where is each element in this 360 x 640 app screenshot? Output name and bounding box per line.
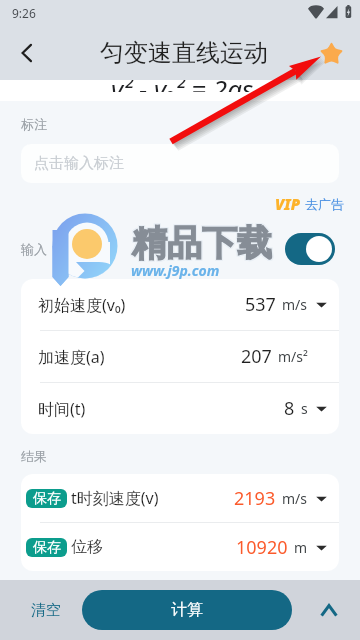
staticText: 207 xyxy=(241,344,272,369)
button[interactable]: 点击输入标注 xyxy=(21,144,339,183)
staticText: m/s² xyxy=(278,347,308,366)
button[interactable]: 保存 xyxy=(21,523,339,571)
button[interactable]: 加速度(a) xyxy=(21,331,339,382)
staticText: 清空 xyxy=(31,601,61,620)
staticText: 9:26 xyxy=(12,5,36,21)
button[interactable]: 保存 xyxy=(21,474,339,522)
staticText: 537 xyxy=(245,292,276,317)
staticText: 8 xyxy=(284,396,295,421)
button[interactable]: Toggle ads xyxy=(285,233,335,265)
staticText: m/s xyxy=(282,489,308,508)
staticText: 结果 xyxy=(21,448,47,464)
staticText: www.j9p.com xyxy=(131,261,220,280)
staticText: 精品下载 xyxy=(132,222,272,266)
staticText: 精品下载 xyxy=(132,221,272,265)
button[interactable]: 时间(t) xyxy=(21,383,339,434)
staticText: s xyxy=(301,399,308,418)
button[interactable]: 初始速度(v₀) xyxy=(21,279,339,330)
button[interactable]: 计算 xyxy=(82,590,292,630)
staticText: t时刻速度(v) xyxy=(71,487,159,509)
staticText: 匀变速直线运动 xyxy=(100,38,268,68)
staticText: 精品下载 xyxy=(133,222,273,266)
staticText: 标注 xyxy=(21,116,47,132)
staticText: 位移 xyxy=(71,537,103,557)
button[interactable]: Favorite xyxy=(311,33,351,73)
staticText: 精品下载 xyxy=(133,220,273,264)
staticText: 输入 xyxy=(21,241,47,257)
staticText: 精品下载 xyxy=(131,221,271,265)
button[interactable]: Back xyxy=(4,30,50,76)
staticText: 点击输入标注 xyxy=(34,154,124,173)
staticText: 精品下载 xyxy=(133,221,273,265)
staticText: 精品下载 xyxy=(131,220,271,264)
staticText: 保存 xyxy=(33,539,61,557)
staticText: 精品下载 xyxy=(132,220,272,264)
staticText: v² − v₀² = 2as xyxy=(111,80,254,92)
staticText: 10920 xyxy=(236,535,288,560)
staticText: 精品下载 xyxy=(131,222,271,266)
staticText: 去广告 xyxy=(305,196,344,212)
staticText: 2193 xyxy=(234,486,276,511)
staticText: 计算 xyxy=(171,600,203,620)
staticText: m/s xyxy=(282,295,308,314)
staticText: 保存 xyxy=(33,490,61,508)
staticText: VIP xyxy=(275,194,300,214)
staticText: 时间(t) xyxy=(38,398,86,420)
button[interactable]: Expand xyxy=(306,587,352,633)
staticText: 初始速度(v₀) xyxy=(38,294,126,316)
staticText: m xyxy=(294,538,308,557)
staticText: 加速度(a) xyxy=(38,346,105,368)
button[interactable]: 清空 xyxy=(16,587,76,633)
